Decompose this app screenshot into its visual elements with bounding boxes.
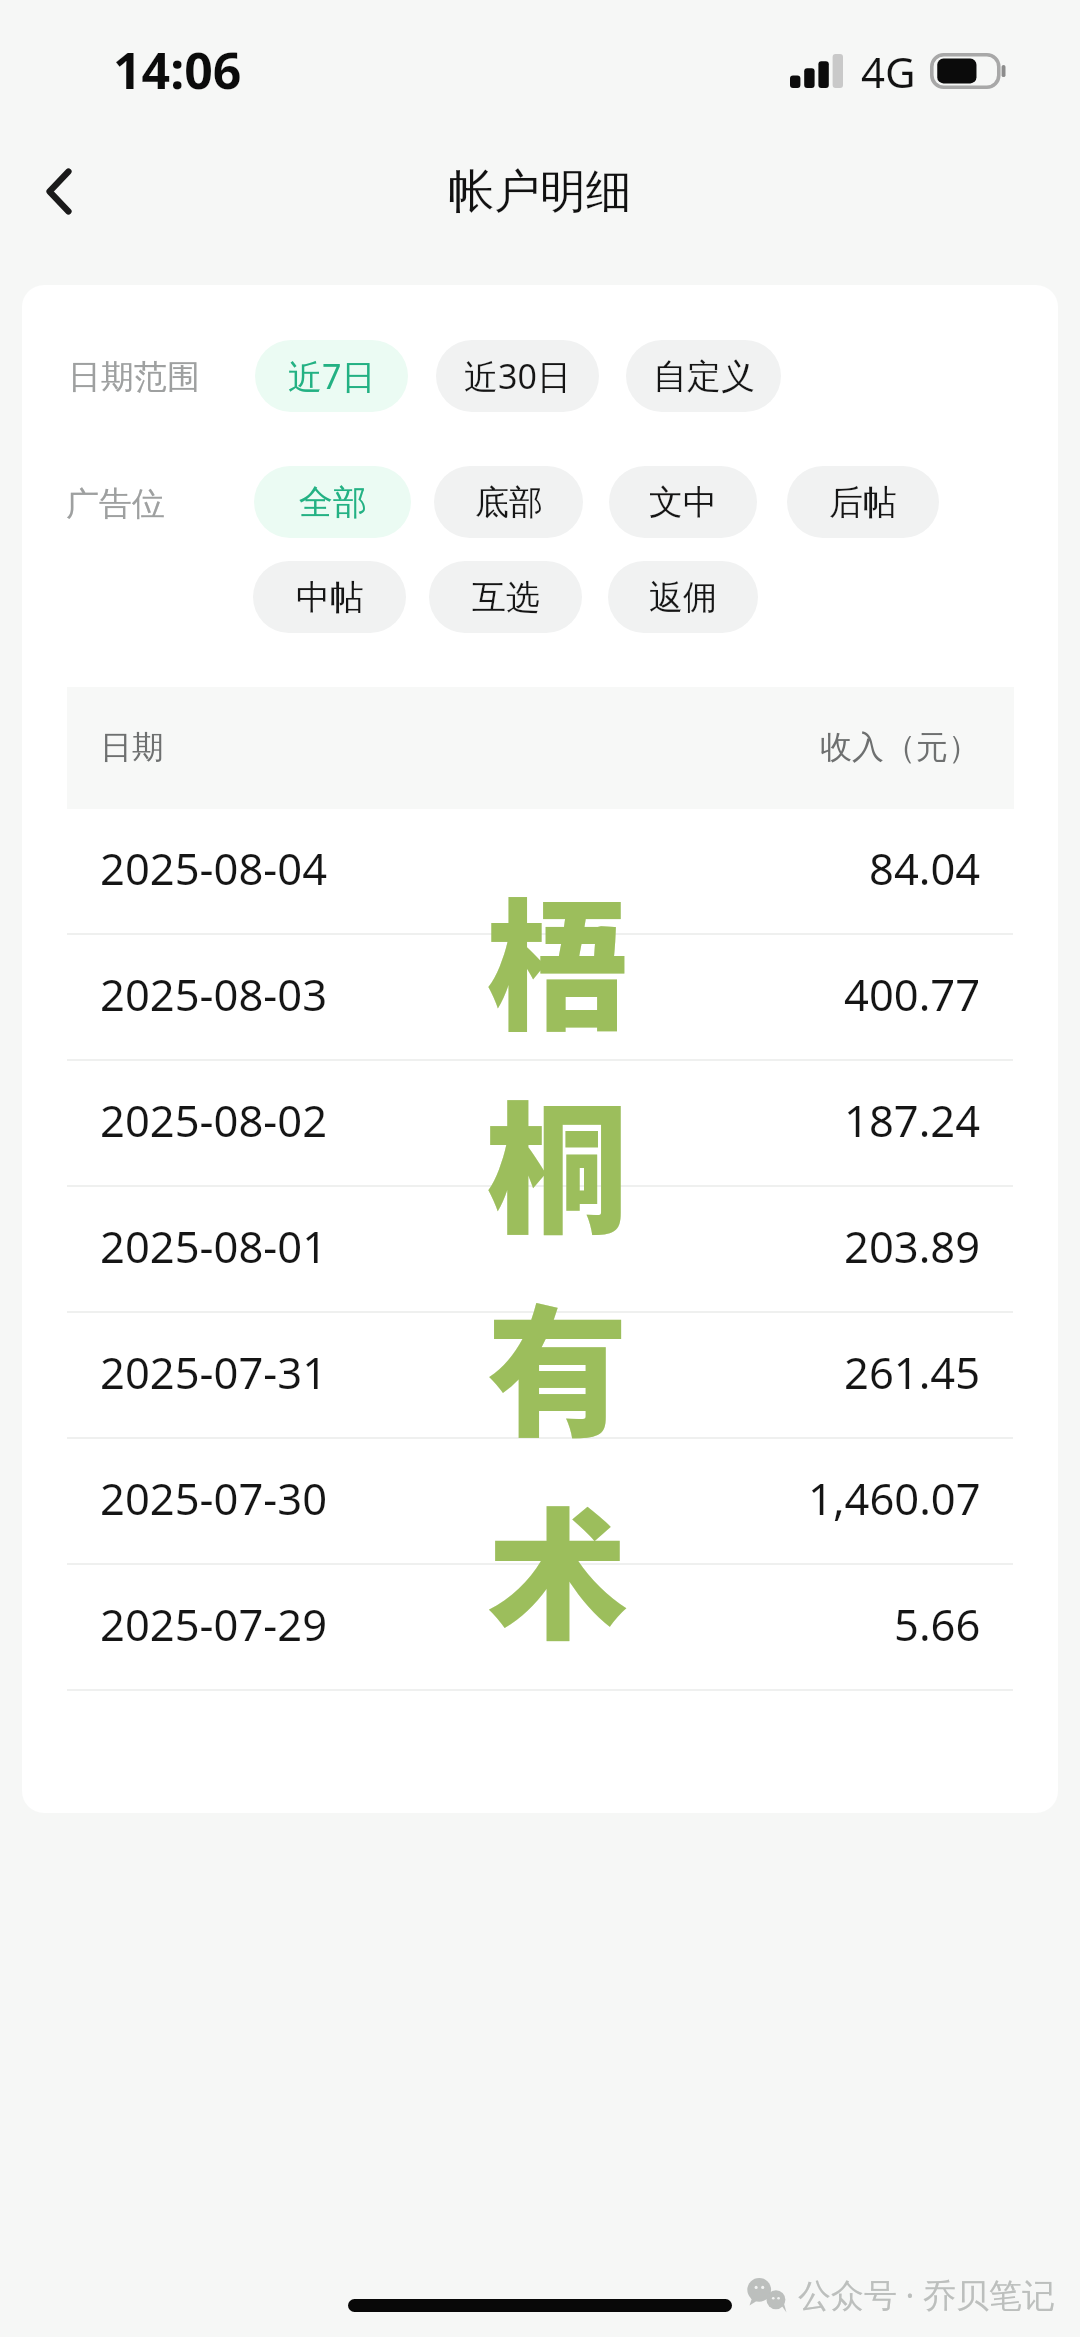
- staticText: 400.77: [844, 964, 981, 1023]
- staticText: 261.45: [844, 1342, 981, 1401]
- staticText: 广告位: [66, 483, 165, 525]
- staticText: 2025-08-03: [100, 964, 328, 1023]
- staticText: 自定义: [653, 355, 755, 398]
- staticText: 2025-08-01: [100, 1216, 328, 1275]
- button[interactable]: 全部: [254, 466, 411, 538]
- staticText: 全部: [299, 481, 367, 524]
- button[interactable]: 2025-08-03: [67, 935, 1014, 1061]
- staticText: 日期: [100, 727, 164, 767]
- button[interactable]: 2025-08-04: [67, 809, 1014, 935]
- staticText: 2025-07-31: [100, 1342, 328, 1401]
- staticText: 梧: [487, 854, 629, 1057]
- button[interactable]: 2025-08-02: [67, 1061, 1014, 1187]
- button[interactable]: 2025-07-29: [67, 1565, 1014, 1691]
- button[interactable]: 文中: [609, 466, 757, 538]
- button[interactable]: 2025-07-31: [67, 1313, 1014, 1439]
- button[interactable]: 后帖: [787, 466, 939, 538]
- staticText: 公众号 · 乔贝笔记: [798, 2272, 1056, 2317]
- button[interactable]: 返佣: [608, 561, 758, 633]
- button[interactable]: 底部: [434, 466, 583, 538]
- staticText: 2025-08-04: [100, 838, 328, 897]
- staticText: 近30日: [464, 353, 571, 399]
- staticText: 84.04: [869, 838, 981, 897]
- staticText: 187.24: [844, 1090, 981, 1149]
- staticText: 中帖: [296, 576, 364, 619]
- staticText: 收入（元）: [820, 727, 980, 767]
- staticText: 14:06: [113, 36, 242, 104]
- staticText: 桐: [487, 1057, 629, 1260]
- staticText: 2025-07-30: [100, 1468, 328, 1527]
- staticText: 互选: [472, 576, 540, 619]
- staticText: 后帖: [829, 481, 897, 524]
- staticText: 203.89: [844, 1216, 981, 1275]
- button[interactable]: 自定义: [626, 340, 781, 412]
- button[interactable]: 中帖: [253, 561, 406, 633]
- staticText: 1,460.07: [808, 1468, 981, 1527]
- staticText: 5.66: [894, 1594, 981, 1653]
- staticText: 2025-07-29: [100, 1594, 328, 1653]
- button[interactable]: 2025-07-30: [67, 1439, 1014, 1565]
- staticText: 4G: [861, 43, 916, 100]
- staticText: 日期范围: [68, 356, 200, 398]
- button[interactable]: Back: [20, 152, 98, 230]
- staticText: 术: [487, 1463, 629, 1666]
- staticText: 2025-08-02: [100, 1090, 328, 1149]
- button[interactable]: 近7日: [255, 340, 408, 412]
- button[interactable]: 互选: [429, 561, 582, 633]
- button[interactable]: 2025-08-01: [67, 1187, 1014, 1313]
- staticText: 有: [487, 1260, 629, 1463]
- staticText: 近7日: [288, 353, 376, 399]
- staticText: 返佣: [649, 576, 717, 619]
- button[interactable]: 近30日: [436, 340, 599, 412]
- staticText: 帐户明细: [448, 163, 632, 221]
- staticText: 底部: [475, 481, 543, 524]
- staticText: 文中: [649, 481, 717, 524]
